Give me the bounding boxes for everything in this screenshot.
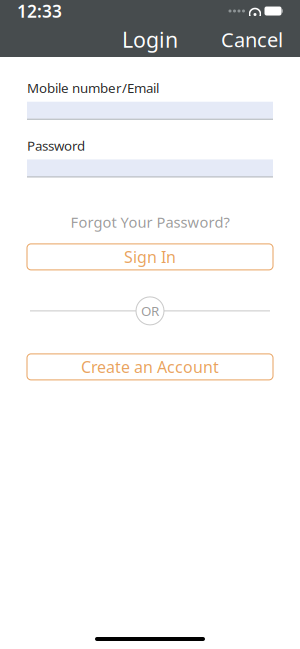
button[interactable]: Cancel [211,20,293,59]
staticText: Login [122,25,178,54]
staticText: Cancel [221,26,283,53]
button[interactable]: Forgot Your Password? [60,208,239,236]
staticText: Create an Account [81,356,219,377]
button[interactable]: Sign In [27,244,273,270]
button[interactable]: Create an Account [27,354,273,380]
staticText: Password [27,137,85,154]
staticText: OR [141,302,159,320]
staticText: Mobile number/Email [27,79,159,97]
staticText: 12:33 [17,0,62,22]
staticText: Sign In [124,246,176,267]
staticText: Forgot Your Password? [70,212,229,232]
